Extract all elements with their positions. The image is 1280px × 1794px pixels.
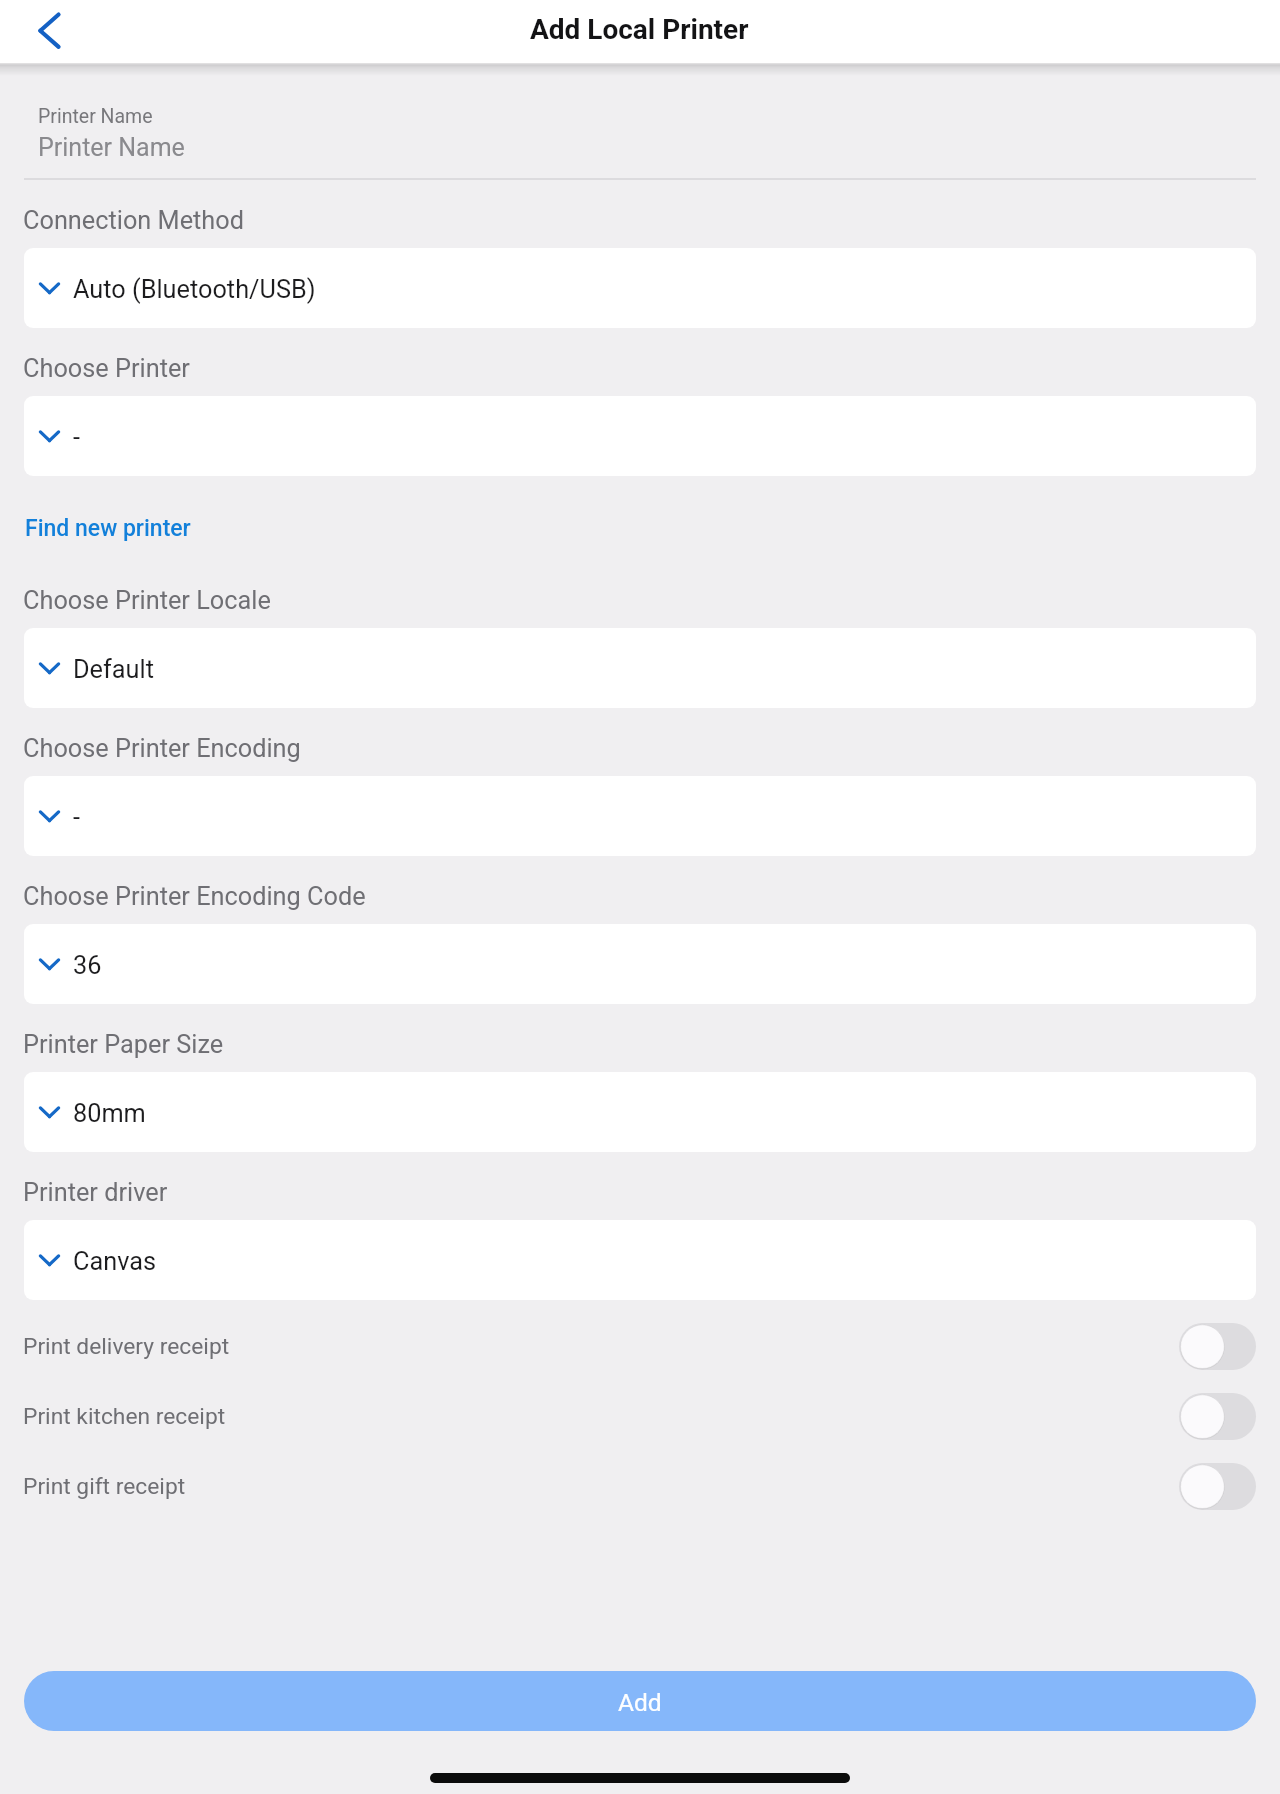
button[interactable]: Print kitchen receipt — [1179, 1393, 1256, 1440]
staticText: 80mm — [73, 1099, 146, 1129]
staticText: Add — [618, 1688, 662, 1717]
staticText: 36 — [73, 951, 102, 981]
button[interactable]: Add — [24, 1671, 1256, 1731]
button[interactable]: - — [24, 396, 1256, 476]
button[interactable]: Default — [24, 628, 1256, 708]
staticText: Add Local Printer — [530, 13, 749, 46]
button[interactable]: 36 — [24, 924, 1256, 1004]
button[interactable]: 80mm — [24, 1072, 1256, 1152]
staticText: Connection Method — [23, 206, 244, 236]
staticText: Canvas — [73, 1247, 157, 1277]
staticText: Print kitchen receipt — [23, 1403, 226, 1430]
button[interactable]: Canvas — [24, 1220, 1256, 1300]
button[interactable]: - — [24, 776, 1256, 856]
staticText: - — [73, 803, 80, 833]
staticText: Default — [73, 655, 154, 685]
button[interactable]: Auto (Bluetooth/USB) — [24, 248, 1256, 328]
staticText: Print gift receipt — [23, 1473, 186, 1500]
button[interactable]: Back — [24, 6, 74, 56]
button[interactable]: Print delivery receipt — [1179, 1323, 1256, 1370]
staticText: Choose Printer — [23, 354, 190, 384]
button[interactable]: Print gift receipt — [1179, 1463, 1256, 1510]
staticText: Print delivery receipt — [23, 1333, 230, 1360]
staticText: Choose Printer Locale — [23, 586, 271, 616]
staticText: Printer driver — [23, 1178, 168, 1208]
staticText: Printer Name — [38, 133, 185, 162]
button[interactable]: Print delivery receipt — [0, 1311, 1280, 1381]
staticText: Choose Printer Encoding Code — [23, 882, 366, 912]
staticText: - — [73, 423, 80, 453]
button[interactable]: Print gift receipt — [0, 1451, 1280, 1521]
staticText: Choose Printer Encoding — [23, 734, 301, 764]
button[interactable]: Print kitchen receipt — [0, 1381, 1280, 1451]
button[interactable]: Find new printer — [15, 505, 201, 552]
staticText: Printer Name — [38, 105, 153, 128]
staticText: Find new printer — [25, 515, 191, 542]
staticText: Printer Paper Size — [23, 1030, 224, 1060]
staticText: Auto (Bluetooth/USB) — [73, 275, 316, 305]
